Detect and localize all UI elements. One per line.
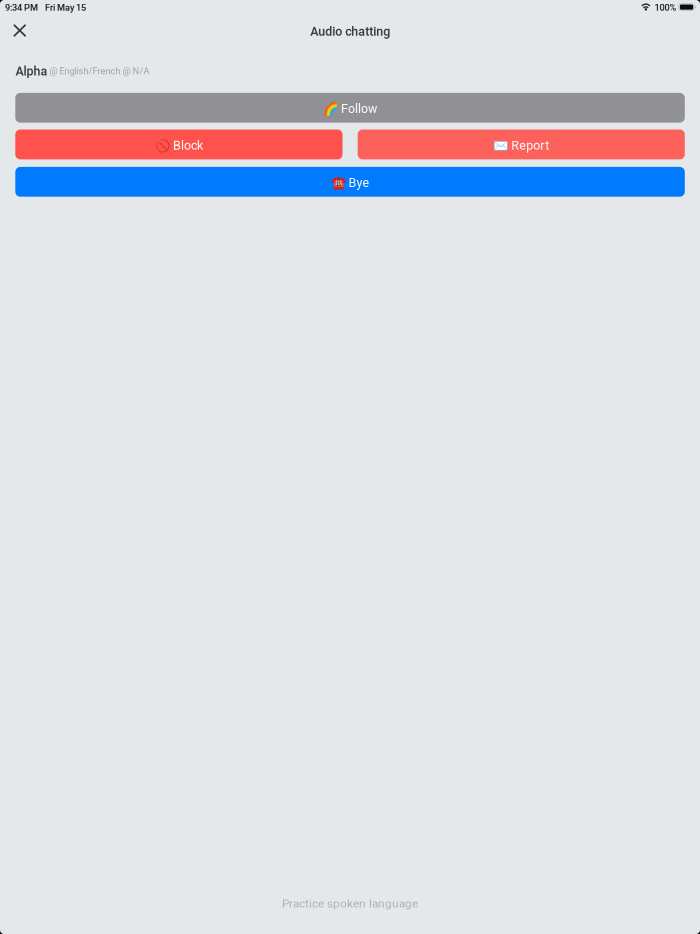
button[interactable]: Close [1,14,39,46]
button[interactable]: 🌈 Follow [15,93,685,123]
staticText: ☎️ Bye [331,175,370,190]
staticText: Alpha [15,64,47,78]
button[interactable]: ☎️ Bye [15,167,685,197]
staticText: Audio chatting [310,24,390,39]
staticText: 9:34 PM [5,2,38,13]
staticText: 🌈 Follow [323,101,377,116]
button[interactable]: ✉️ Report [358,129,685,159]
staticText: Fri May 15 [45,2,86,13]
button[interactable]: 🚫 Block [15,129,342,159]
staticText: ✉️ Report [493,138,549,153]
staticText: Practice spoken language [282,896,418,910]
staticText: 100% [655,2,677,13]
staticText: 🚫 Block [155,138,203,153]
staticText: @ English/French @ N/A [47,66,149,77]
